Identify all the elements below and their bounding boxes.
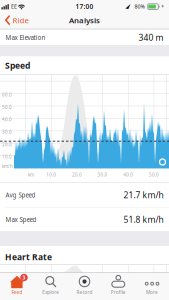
- staticText: Record: [76, 289, 92, 295]
- staticText: 30.0: [98, 172, 108, 178]
- staticText: 30.0: [2, 129, 12, 135]
- staticText: +: [161, 3, 164, 10]
- staticText: 10.0: [46, 172, 56, 178]
- staticText: 20.0: [72, 172, 82, 178]
- staticText: 40.0: [2, 116, 12, 123]
- staticText: Ride: [12, 15, 28, 26]
- button[interactable]: Max Elevation: [0, 29, 169, 45]
- staticText: 17:00: [75, 2, 93, 11]
- staticText: Feed: [11, 289, 22, 295]
- staticText: 340 m: [138, 32, 163, 43]
- staticText: Explore: [42, 289, 59, 295]
- staticText: Heart Rate: [5, 251, 52, 263]
- staticText: 10.0: [2, 154, 12, 160]
- button[interactable]: More: [135, 273, 169, 300]
- staticText: Max Speed: [5, 215, 36, 224]
- staticText: Max Elevation: [5, 33, 45, 42]
- staticText: 51.8 km/h: [123, 214, 163, 225]
- staticText: 3: [22, 274, 25, 281]
- staticText: 80%: [134, 3, 144, 10]
- button[interactable]: Avg Speed: [0, 183, 169, 207]
- button[interactable]: 3: [0, 273, 34, 300]
- staticText: 60.0: [2, 92, 12, 98]
- button[interactable]: Record: [68, 273, 101, 300]
- staticText: km: [28, 172, 34, 178]
- staticText: Profile: [111, 289, 126, 295]
- staticText: km/h: [2, 163, 13, 169]
- staticText: 50.0: [149, 172, 159, 178]
- button[interactable]: Profile: [101, 273, 135, 300]
- staticText: Speed: [5, 60, 30, 71]
- staticText: 20.0: [2, 141, 12, 147]
- staticText: 50.0: [2, 104, 12, 110]
- button[interactable]: Explore: [34, 273, 68, 300]
- button[interactable]: Max Speed: [0, 207, 169, 231]
- staticText: 40.0: [123, 172, 133, 178]
- staticText: 21.7 km/h: [123, 189, 163, 201]
- staticText: More: [146, 289, 158, 295]
- staticText: Avg Speed: [5, 191, 35, 199]
- staticText: EE: [11, 3, 17, 10]
- button[interactable]: Ride: [1, 15, 28, 26]
- staticText: Analysis: [69, 15, 100, 26]
